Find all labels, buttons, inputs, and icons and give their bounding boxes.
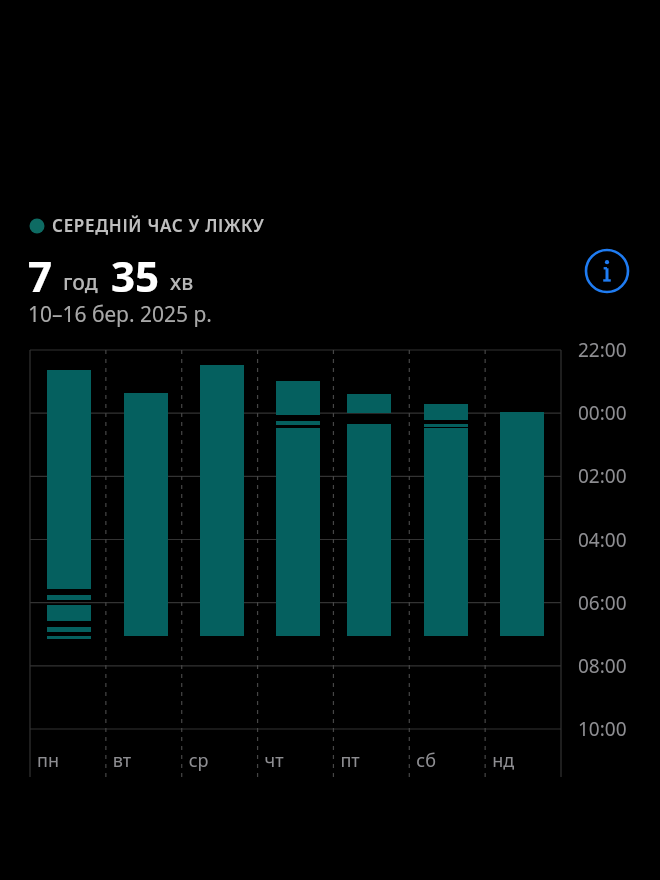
button[interactable]: Інформація	[582, 246, 632, 296]
